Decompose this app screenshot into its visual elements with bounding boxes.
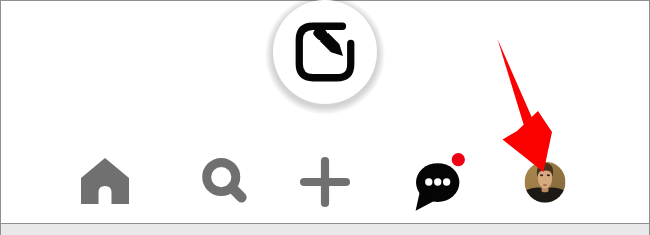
button[interactable]: Messages [410,152,470,212]
button[interactable]: Search [195,152,255,212]
button[interactable]: Compose [273,0,377,104]
button[interactable]: Home [75,152,135,212]
button[interactable]: Profile [515,152,575,212]
button[interactable]: Create [295,152,355,212]
